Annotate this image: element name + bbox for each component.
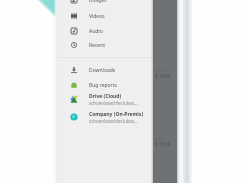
staticText: Images bbox=[89, 0, 107, 4]
staticText: Downloads bbox=[89, 67, 116, 74]
staticText: Bug reports bbox=[89, 82, 117, 89]
button[interactable]: Audio bbox=[56, 24, 152, 38]
staticText: Drive (Cloud) bbox=[89, 93, 122, 100]
button[interactable]: Videos bbox=[56, 9, 152, 23]
button[interactable]: Recent bbox=[56, 38, 152, 52]
staticText: Videos bbox=[89, 13, 105, 20]
button[interactable]: Downloads bbox=[56, 63, 152, 77]
button[interactable]: Images bbox=[56, 0, 152, 7]
staticText: $ 14.00 bbox=[155, 73, 171, 79]
button[interactable]: Company (On-Premis) bbox=[56, 109, 152, 125]
staticText: Audio bbox=[89, 28, 103, 35]
staticText: Company (On-Premis) bbox=[89, 111, 144, 118]
staticText: Recent bbox=[89, 42, 106, 49]
button[interactable]: Drive (Cloud) bbox=[56, 91, 152, 107]
staticText: $ 15.00 bbox=[155, 141, 171, 147]
staticText: schoenbaechler.lukas... bbox=[89, 118, 138, 124]
staticText: schoenbaechler.lukas... bbox=[89, 100, 138, 106]
button[interactable]: Bug reports bbox=[56, 78, 152, 92]
